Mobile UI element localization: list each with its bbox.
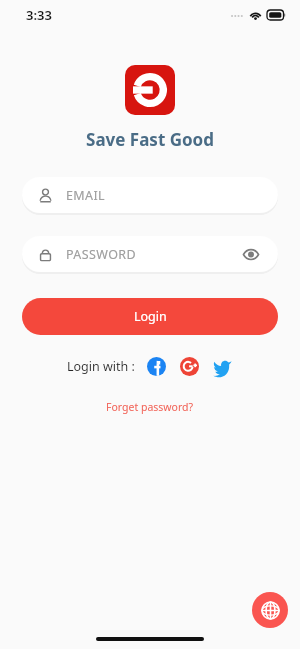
staticText: Save Fast Good xyxy=(0,128,300,151)
staticText: Login with : xyxy=(67,358,135,375)
button[interactable]: Login with Google xyxy=(178,355,200,377)
staticText: Login xyxy=(134,308,167,325)
button[interactable]: Login with Twitter xyxy=(211,355,233,377)
button[interactable]: PASSWORD xyxy=(22,236,278,272)
staticText: EMAIL xyxy=(66,187,106,204)
button[interactable]: Change language xyxy=(252,592,288,628)
staticText: PASSWORD xyxy=(66,246,240,263)
button[interactable]: EMAIL xyxy=(22,177,278,213)
button[interactable]: Show password xyxy=(240,243,262,265)
staticText: 3:33 xyxy=(26,6,52,24)
button[interactable]: App logo xyxy=(125,65,175,115)
button[interactable]: Forget password? xyxy=(100,397,200,417)
staticText: Forget password? xyxy=(106,400,194,414)
button[interactable]: Login xyxy=(22,298,278,335)
button[interactable]: Login with Facebook xyxy=(145,355,167,377)
